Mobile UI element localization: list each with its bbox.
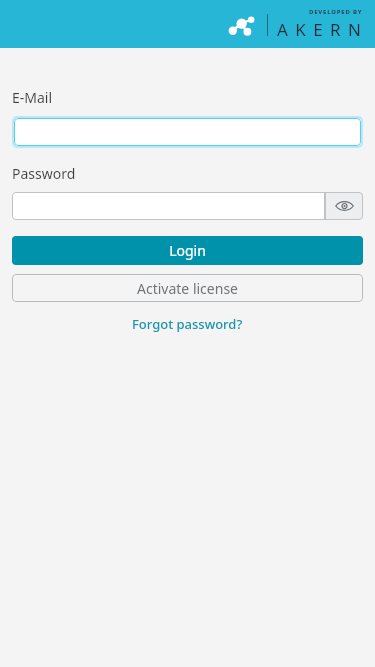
- button[interactable]: Show password: [325, 192, 363, 220]
- button[interactable]: Login: [12, 236, 363, 265]
- button[interactable]: [12, 192, 325, 220]
- button[interactable]: [14, 118, 361, 146]
- button[interactable]: Activate license: [12, 274, 363, 302]
- staticText: Forgot password?: [132, 315, 243, 333]
- staticText: DEVELOPED BY: [309, 8, 363, 16]
- staticText: Activate license: [137, 279, 238, 298]
- button[interactable]: Forgot password?: [126, 313, 249, 335]
- staticText: Password: [12, 164, 76, 183]
- staticText: E-Mail: [12, 88, 53, 107]
- staticText: A K E R N: [277, 18, 363, 41]
- staticText: Login: [169, 241, 206, 260]
